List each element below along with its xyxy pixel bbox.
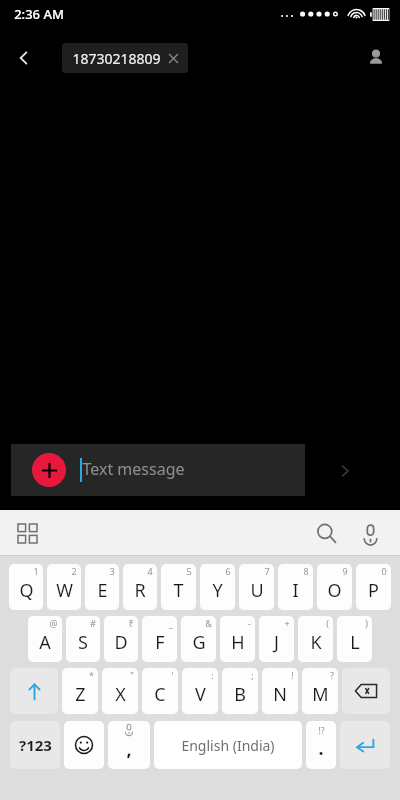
button[interactable]: Search (306, 513, 346, 553)
staticText: English (India) (181, 736, 275, 755)
button[interactable]: 3 (85, 564, 119, 610)
button[interactable]: 8 (278, 564, 313, 610)
staticText: ?123 (19, 735, 52, 755)
staticText: 9 (342, 565, 348, 577)
button[interactable]: 6 (200, 564, 235, 610)
button[interactable]: 5 (161, 564, 196, 610)
button[interactable]: Enter (340, 721, 390, 769)
button[interactable]: ( (298, 616, 333, 662)
button[interactable]: 2 (47, 564, 81, 610)
staticText: E (97, 578, 108, 603)
button[interactable]: 7 (239, 564, 274, 610)
staticText: ; (251, 669, 254, 681)
button[interactable]: Shift (10, 668, 58, 714)
staticText: G (192, 630, 206, 655)
button[interactable]: English (India) (154, 721, 302, 769)
staticText: T (173, 578, 184, 603)
staticText: ( (326, 617, 329, 629)
button[interactable]: " (102, 668, 138, 714)
staticText: 18730218809 (72, 49, 161, 68)
staticText: 1 (33, 565, 39, 577)
button[interactable]: ₹ (104, 616, 138, 662)
staticText: - (248, 617, 251, 629)
button[interactable]: 4 (123, 564, 157, 610)
staticText: ₹ (128, 617, 134, 629)
button[interactable]: !? (306, 721, 336, 769)
button[interactable]: Backspace (342, 668, 390, 714)
staticText: @ (49, 617, 58, 629)
staticText: !? (318, 724, 325, 736)
staticText: B (234, 682, 246, 707)
button[interactable]: Add attachment (32, 453, 66, 487)
staticText: S (78, 630, 88, 655)
button[interactable]: , (108, 721, 150, 769)
staticText: ? (330, 669, 334, 681)
staticText: 8 (303, 565, 309, 577)
staticText: * (89, 669, 94, 681)
staticText: X (115, 682, 126, 707)
button[interactable]: Voice input (350, 513, 390, 553)
staticText: 0 (381, 565, 387, 577)
button[interactable]: _ (142, 616, 177, 662)
staticText: . (318, 736, 324, 761)
staticText: ! (291, 669, 294, 681)
button[interactable]: 18730218809 (62, 43, 188, 73)
staticText: C (154, 682, 166, 707)
button[interactable]: Emoji (64, 721, 104, 769)
staticText: F (155, 630, 165, 655)
button[interactable]: 1 (9, 564, 43, 610)
button[interactable]: ' (142, 668, 178, 714)
button[interactable]: 9 (317, 564, 352, 610)
staticText: 7 (264, 565, 270, 577)
staticText: Y (212, 578, 223, 603)
button[interactable]: Back (0, 34, 48, 82)
button[interactable]: ; (222, 668, 258, 714)
button[interactable]: * (62, 668, 98, 714)
staticText: 2:36 AM (14, 5, 64, 23)
staticText: K (310, 630, 322, 655)
button[interactable]: Keyboard options (8, 514, 46, 552)
button[interactable]: Contact details (352, 34, 400, 82)
button[interactable]: & (181, 616, 216, 662)
staticText: " (130, 669, 134, 681)
staticText: W (56, 578, 73, 603)
button[interactable]: : (182, 668, 218, 714)
staticText: 4 (147, 565, 153, 577)
staticText: , (126, 737, 132, 762)
staticText: ' (171, 669, 174, 681)
staticText: Z (75, 682, 86, 707)
button[interactable]: Send (330, 456, 360, 486)
staticText: J (274, 630, 279, 655)
button[interactable]: 0 (356, 564, 391, 610)
staticText: M (312, 682, 329, 707)
button[interactable]: ) (337, 616, 372, 662)
staticText: Q (19, 578, 34, 603)
staticText: P (368, 578, 379, 603)
staticText: O (327, 578, 342, 603)
staticText: U (250, 578, 264, 603)
button[interactable]: + (259, 616, 294, 662)
staticText: Text message (82, 458, 185, 480)
staticText: : (211, 669, 214, 681)
staticText: 6 (225, 565, 231, 577)
staticText: D (114, 630, 128, 655)
button[interactable]: ?123 (10, 721, 60, 769)
button[interactable]: ? (302, 668, 338, 714)
staticText: A (39, 630, 51, 655)
staticText: N (273, 682, 287, 707)
button[interactable]: # (66, 616, 100, 662)
button[interactable]: Add attachment (11, 444, 305, 496)
staticText: I (292, 578, 299, 603)
button[interactable]: - (220, 616, 255, 662)
staticText: _ (169, 617, 173, 629)
staticText: 5 (186, 565, 192, 577)
staticText: H (231, 630, 245, 655)
staticText: L (350, 630, 360, 655)
staticText: 3 (109, 565, 115, 577)
staticText: V (195, 682, 206, 707)
staticText: + (284, 617, 290, 629)
staticText: # (90, 617, 96, 629)
button[interactable]: ! (262, 668, 298, 714)
button[interactable]: @ (28, 616, 62, 662)
staticText: ) (365, 617, 368, 629)
